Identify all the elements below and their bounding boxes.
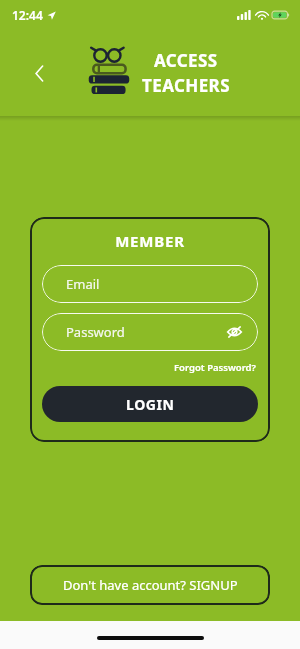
staticText: Password — [66, 323, 125, 341]
staticText: Email — [66, 275, 100, 293]
button[interactable]: Forgot Password? — [172, 359, 258, 376]
button[interactable]: LOGIN — [42, 386, 258, 422]
button[interactable]: Don't have account? SIGNUP — [30, 565, 270, 605]
staticText: LOGIN — [126, 395, 175, 414]
staticText: ACCESS — [154, 49, 218, 72]
button[interactable]: Password — [42, 313, 258, 351]
staticText: Don't have account? SIGNUP — [63, 576, 238, 594]
staticText: TEACHERS — [142, 74, 230, 97]
staticText: 12:44 — [12, 7, 43, 23]
button[interactable]: Show password — [224, 322, 244, 342]
button[interactable]: Email — [42, 265, 258, 303]
staticText: MEMBER — [42, 231, 258, 251]
button[interactable]: Back — [26, 60, 52, 86]
